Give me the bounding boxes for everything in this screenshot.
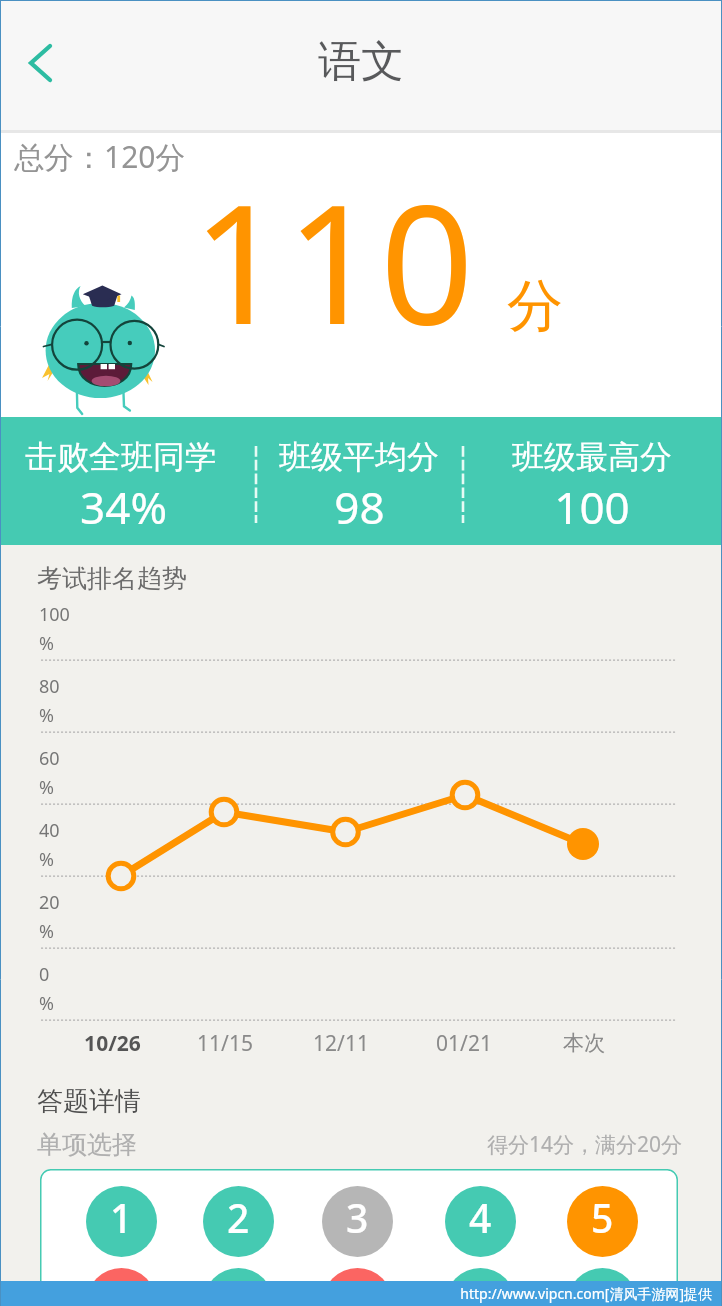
staticText: % — [39, 919, 54, 944]
staticText: 40 — [39, 818, 60, 843]
staticText: 2 — [227, 1191, 250, 1244]
button[interactable]: 8 — [322, 1268, 393, 1306]
staticText: 1 — [110, 1191, 133, 1244]
staticText: 班级最高分 — [512, 437, 672, 477]
button[interactable]: 10 — [567, 1268, 638, 1306]
staticText: 班级平均分 — [279, 437, 439, 477]
button[interactable]: 1 — [86, 1186, 157, 1257]
staticText: 100 — [554, 477, 630, 537]
staticText: 110 — [192, 149, 474, 369]
button[interactable]: Back — [0, 18, 90, 108]
button[interactable]: 2 — [203, 1186, 274, 1257]
staticText: % — [39, 847, 54, 872]
button[interactable]: 6 — [86, 1268, 157, 1306]
staticText: 20 — [39, 890, 60, 915]
staticText: % — [39, 991, 54, 1016]
staticText: 34% — [80, 477, 167, 537]
staticText: 总分：120分 — [14, 136, 186, 177]
staticText: 80 — [39, 674, 60, 699]
staticText: 3 — [346, 1191, 369, 1244]
staticText: 6 — [110, 1273, 133, 1306]
staticText: % — [39, 775, 54, 800]
staticText: % — [39, 631, 54, 656]
button[interactable]: 3 — [322, 1186, 393, 1257]
button[interactable]: 5 — [567, 1186, 638, 1257]
button[interactable]: 7 — [203, 1268, 274, 1306]
staticText: 5 — [591, 1191, 614, 1244]
staticText: http://www.vipcn.com[清风手游网]提供 — [460, 1284, 712, 1303]
button[interactable]: 9 — [445, 1268, 516, 1306]
staticText: 11/15 — [197, 1029, 253, 1058]
staticText: 8 — [346, 1273, 369, 1306]
staticText: 4 — [469, 1191, 492, 1244]
staticText: 0 — [39, 962, 50, 987]
staticText: 100 — [39, 602, 70, 627]
staticText: 答题详情 — [37, 1085, 141, 1118]
staticText: 分 — [507, 271, 563, 342]
staticText: 击败全班同学 — [25, 437, 217, 477]
staticText: 得分14分，满分20分 — [486, 1130, 682, 1159]
staticText: 单项选择 — [37, 1129, 137, 1160]
staticText: 01/21 — [436, 1029, 492, 1058]
staticText: 7 — [227, 1273, 250, 1306]
staticText: 10 — [580, 1273, 625, 1306]
staticText: 本次 — [563, 1030, 605, 1056]
staticText: 10/26 — [84, 1029, 141, 1058]
staticText: 98 — [334, 477, 385, 537]
button[interactable]: 4 — [445, 1186, 516, 1257]
staticText: 9 — [469, 1273, 492, 1306]
staticText: 考试排名趋势 — [37, 563, 187, 594]
staticText: 语文 — [318, 35, 404, 89]
staticText: 12/11 — [313, 1029, 369, 1058]
staticText: 60 — [39, 746, 60, 771]
button[interactable] — [40, 1169, 678, 1306]
staticText: % — [39, 703, 54, 728]
